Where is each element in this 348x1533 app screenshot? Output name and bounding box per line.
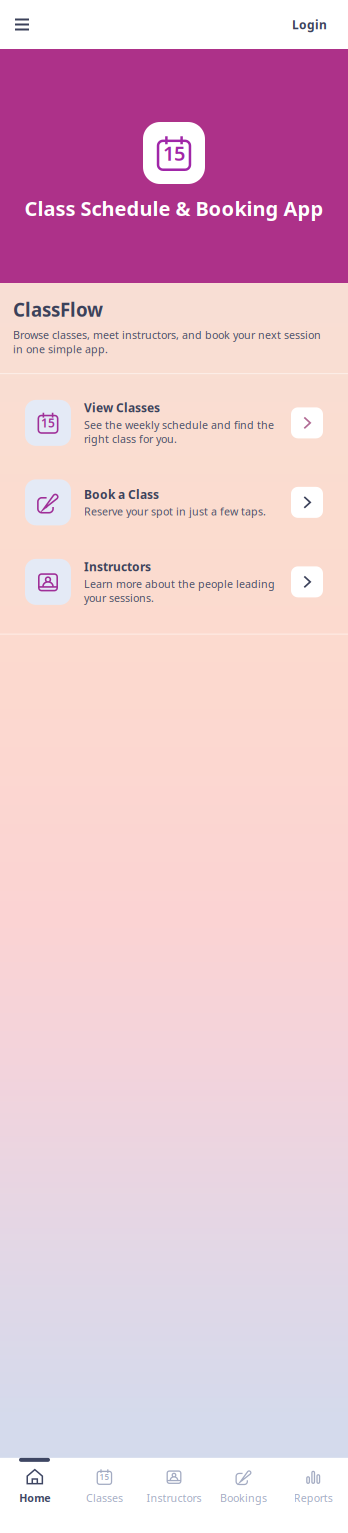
staticText: Instructors [84,559,151,575]
button[interactable]: Bookings [209,1467,278,1505]
button[interactable]: Instructors [139,1467,209,1505]
staticText: Book a Class [84,486,159,502]
staticText: Bookings [220,1491,267,1505]
staticText: Instructors [146,1491,201,1505]
button[interactable]: 15 [70,1467,139,1505]
button[interactable]: 15 [0,383,348,463]
button[interactable]: Menu [0,2,45,46]
staticText: Classes [86,1491,123,1505]
staticText: 15 [99,1471,109,1482]
button[interactable]: Book a Class [0,463,348,542]
staticText: 15 [163,140,185,166]
staticText: 15 [41,415,55,431]
staticText: Browse classes, meet instructors, and bo… [13,328,321,356]
staticText: Class Schedule & Booking App [24,195,323,222]
button[interactable]: Reports [278,1467,348,1505]
staticText: View Classes [84,400,160,416]
staticText: ClassFlow [13,297,103,322]
button[interactable]: Instructors [0,542,348,622]
staticText: Learn more about the people leading your… [84,577,275,605]
staticText: Reports [294,1491,333,1505]
staticText: See the weekly schedule and find the rig… [84,418,274,446]
staticText: Login [292,16,327,32]
staticText: Reserve your spot in just a few taps. [84,504,266,518]
staticText: Home [19,1491,50,1505]
button[interactable]: Login [274,0,348,48]
button[interactable]: Home [0,1467,70,1505]
